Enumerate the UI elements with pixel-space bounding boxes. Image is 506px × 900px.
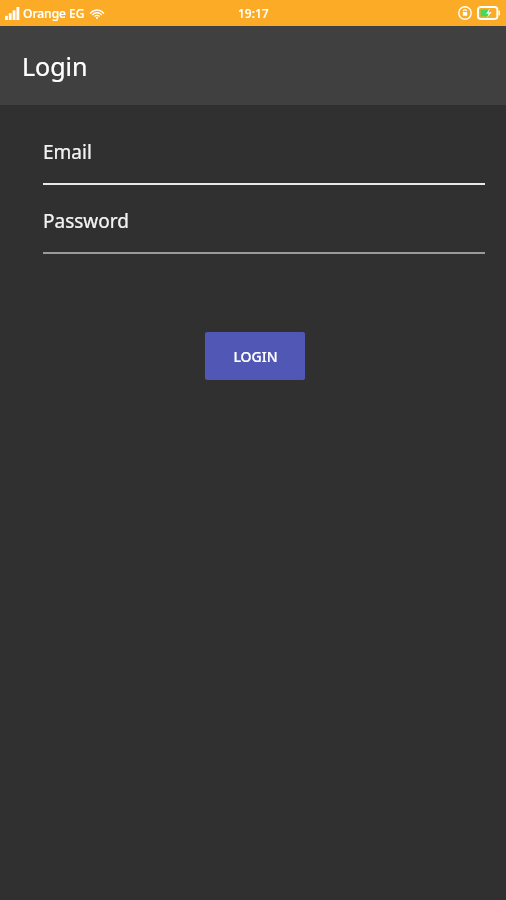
button[interactable]: LOGIN <box>205 332 305 380</box>
button[interactable]: Email <box>43 134 485 185</box>
staticText: Password <box>43 208 129 234</box>
staticText: LOGIN <box>233 347 278 366</box>
staticText: 19:17 <box>238 5 269 21</box>
button[interactable]: Password <box>43 203 485 254</box>
staticText: Email <box>43 139 92 165</box>
staticText: Login <box>22 49 88 83</box>
staticText: Orange EG <box>23 5 85 21</box>
